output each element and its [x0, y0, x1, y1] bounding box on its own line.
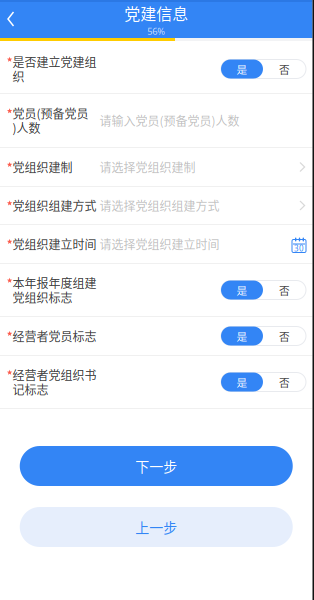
staticText: 否: [279, 61, 290, 77]
staticText: 是: [236, 282, 247, 298]
staticText: 56%: [147, 25, 165, 37]
button[interactable]: 上一步: [20, 507, 293, 547]
staticText: 是否建立党建组 织: [12, 53, 96, 85]
staticText: 党组织建立时间: [12, 235, 96, 253]
staticText: 否: [279, 328, 290, 344]
staticText: 否: [279, 374, 290, 390]
staticText: 请输入党员(预备党员)人数: [99, 112, 239, 129]
staticText: 下一步: [135, 456, 177, 476]
staticText: 上一步: [135, 517, 177, 537]
staticText: 请选择党组织建制: [99, 158, 195, 176]
button[interactable]: Back: [0, 0, 22, 38]
button[interactable]: 是: [221, 59, 306, 78]
staticText: 请选择党组织组建方式: [99, 197, 219, 214]
staticText: 党组织组建方式: [12, 197, 96, 214]
staticText: 是: [236, 374, 247, 390]
staticText: 否: [279, 282, 290, 298]
button[interactable]: 下一步: [20, 446, 293, 486]
staticText: 党建信息: [124, 2, 188, 25]
staticText: 请选择党组织建立时间: [99, 235, 219, 253]
staticText: 30: [294, 243, 304, 254]
staticText: 党组织建制: [12, 158, 72, 176]
staticText: 经营者党组织书 记标志: [12, 366, 96, 398]
staticText: 本年报年度组建 党组织标志: [12, 274, 96, 306]
staticText: 是: [236, 61, 247, 77]
button[interactable]: 是: [221, 326, 306, 345]
button[interactable]: 是: [221, 280, 306, 299]
staticText: 是: [236, 328, 247, 344]
staticText: 党员(预备党员 )人数: [12, 105, 88, 136]
staticText: 经营者党员标志: [12, 327, 96, 345]
button[interactable]: 是: [221, 372, 306, 391]
